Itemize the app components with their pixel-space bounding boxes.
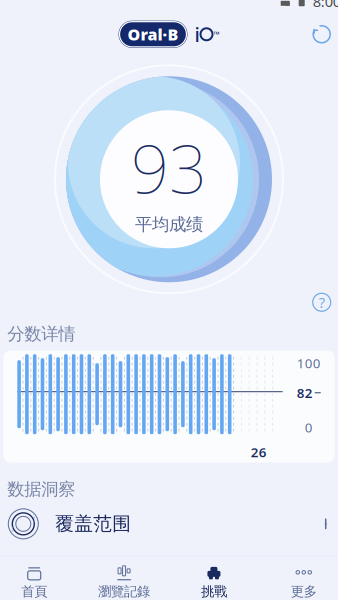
staticText: 分数详情 <box>7 323 75 345</box>
staticText: 0 <box>305 418 313 436</box>
staticText: Oral·B <box>127 24 178 45</box>
staticText: 挑戰 <box>201 583 227 600</box>
button[interactable]: Help <box>309 289 335 315</box>
staticText: 26 <box>251 443 267 461</box>
staticText: 瀏覽記錄 <box>98 583 150 600</box>
staticText: ™ <box>213 29 219 40</box>
button[interactable]: 瀏覽記錄 <box>79 558 169 600</box>
button[interactable]: Refresh <box>305 17 338 51</box>
staticText: 首頁 <box>21 583 47 600</box>
staticText: 100 <box>297 354 321 372</box>
staticText: 数据洞察 <box>7 479 75 500</box>
staticText: i <box>194 21 199 48</box>
staticText: 82 <box>297 384 313 402</box>
staticText: 8:00 <box>313 0 338 11</box>
staticText: 93 <box>131 123 207 212</box>
staticText: 平均成绩 <box>135 214 203 235</box>
staticText: 更多 <box>291 583 317 600</box>
button[interactable]: 更多 <box>259 558 338 600</box>
button[interactable]: 首頁 <box>0 558 79 600</box>
staticText: ? <box>319 292 325 312</box>
staticText: 覆盖范围 <box>55 512 131 535</box>
button[interactable]: 挑戰 <box>169 558 259 600</box>
button[interactable]: 覆盖范围 <box>0 500 338 548</box>
